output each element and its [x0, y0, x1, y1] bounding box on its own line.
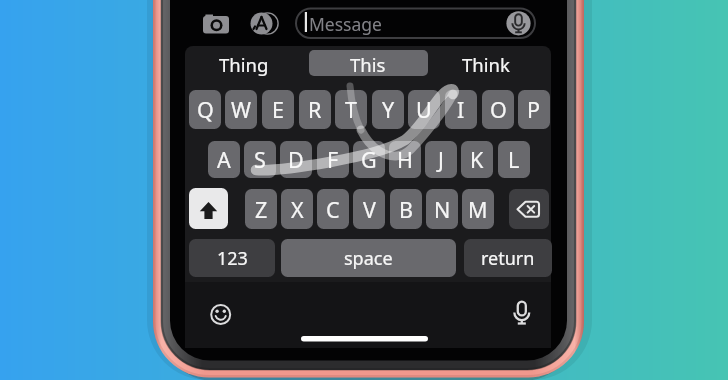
staticText: E	[272, 95, 284, 124]
staticText: G	[361, 145, 377, 174]
button[interactable]	[510, 300, 534, 325]
staticText: Z	[255, 195, 268, 224]
button[interactable]: Y	[372, 90, 404, 129]
staticText: K	[470, 145, 484, 174]
staticText: Message	[309, 12, 382, 36]
button[interactable]: space	[281, 239, 456, 277]
staticText: L	[508, 145, 520, 174]
staticText: U	[416, 95, 432, 124]
staticText: M	[468, 195, 488, 224]
button[interactable]: A	[208, 141, 240, 178]
staticText: return	[481, 246, 535, 271]
staticText: 123	[217, 246, 248, 271]
button[interactable]: L	[498, 141, 530, 178]
staticText: W	[231, 95, 251, 124]
button[interactable]: J	[425, 141, 457, 178]
button[interactable]: 123	[189, 239, 275, 277]
button[interactable]: Z	[245, 189, 277, 229]
button[interactable]	[509, 189, 549, 229]
staticText: B	[399, 195, 413, 224]
staticText: C	[326, 195, 340, 224]
button[interactable]	[505, 10, 532, 37]
staticText: N	[434, 195, 451, 224]
button[interactable]: X	[281, 189, 313, 229]
staticText: D	[288, 145, 304, 174]
button[interactable]: B	[390, 189, 422, 229]
button[interactable]: H	[389, 141, 421, 178]
button[interactable]: V	[353, 189, 385, 229]
button[interactable]: W	[225, 90, 257, 129]
button[interactable]: R	[299, 90, 331, 129]
button[interactable]: P	[518, 90, 550, 129]
button[interactable]: K	[461, 141, 493, 178]
button[interactable]	[298, 332, 431, 345]
button[interactable]: D	[280, 141, 312, 178]
button[interactable]: Thing	[219, 52, 269, 77]
staticText: space	[344, 246, 393, 271]
button[interactable]	[209, 303, 232, 326]
button[interactable]: C	[317, 189, 349, 229]
button[interactable]	[200, 11, 232, 37]
staticText: This	[350, 52, 386, 77]
staticText: J	[438, 145, 444, 174]
button[interactable]: O	[482, 90, 514, 129]
staticText: I	[457, 95, 465, 124]
button[interactable]: S	[244, 141, 276, 178]
button[interactable]: Q	[189, 90, 221, 129]
staticText: X	[291, 195, 304, 224]
staticText: S	[254, 145, 266, 174]
button[interactable]: T	[335, 90, 367, 129]
staticText: T	[345, 95, 357, 124]
button[interactable]: F	[317, 141, 349, 178]
staticText: F	[327, 145, 339, 174]
button[interactable]: U	[408, 90, 440, 129]
staticText: Y	[382, 95, 395, 124]
button[interactable]: Think	[462, 52, 510, 77]
button[interactable]: return	[464, 239, 552, 277]
staticText: H	[397, 145, 413, 174]
staticText: Q	[197, 95, 214, 124]
staticText: R	[308, 95, 322, 124]
button[interactable]: I	[445, 90, 477, 129]
button[interactable]: G	[353, 141, 385, 178]
button[interactable]: N	[426, 189, 458, 229]
staticText: O	[490, 95, 507, 124]
button[interactable]	[248, 10, 276, 37]
staticText: A	[217, 145, 231, 174]
button[interactable]	[189, 188, 228, 229]
staticText: V	[363, 195, 376, 224]
button[interactable]	[296, 9, 535, 39]
button[interactable]: M	[462, 189, 494, 229]
button[interactable]	[309, 50, 428, 76]
button[interactable]: E	[262, 90, 294, 129]
staticText: P	[527, 95, 541, 124]
